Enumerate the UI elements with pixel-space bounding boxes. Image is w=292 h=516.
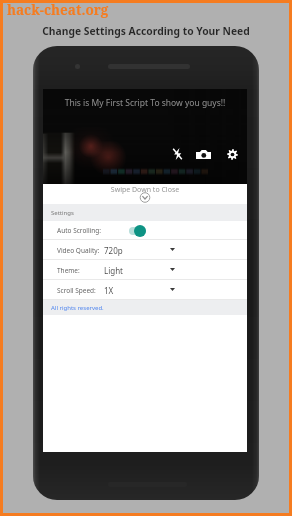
button[interactable]: Theme:	[43, 260, 247, 280]
staticText: Light	[104, 265, 124, 276]
staticText: Change Settings According to Your Need	[3, 24, 289, 38]
button[interactable]: Swipe Down to Close	[43, 184, 247, 204]
button[interactable]: Scroll Speed:	[43, 280, 247, 300]
staticText: 720p	[104, 245, 123, 256]
staticText: Video Quality:	[57, 246, 100, 255]
staticText: Theme:	[57, 266, 80, 275]
button[interactable]: All rights reserved.	[43, 300, 247, 315]
staticText: Swipe Down to Close	[43, 185, 247, 195]
button[interactable]: Take photo	[193, 144, 213, 164]
staticText: 1X	[104, 285, 114, 296]
button[interactable]: Flash off	[167, 144, 187, 164]
staticText: Auto Scrolling:	[57, 226, 102, 235]
staticText: Scroll Speed:	[57, 286, 96, 295]
button[interactable]: Video Quality:	[43, 240, 247, 260]
staticText: All rights reserved.	[51, 304, 104, 312]
staticText: This is My First Script To show you guys…	[43, 97, 247, 109]
staticText: Settings	[51, 209, 74, 217]
button[interactable]: Settings	[222, 144, 242, 164]
button[interactable]: Auto Scrolling:	[43, 221, 247, 240]
staticText: hack-cheat.org	[7, 1, 109, 19]
